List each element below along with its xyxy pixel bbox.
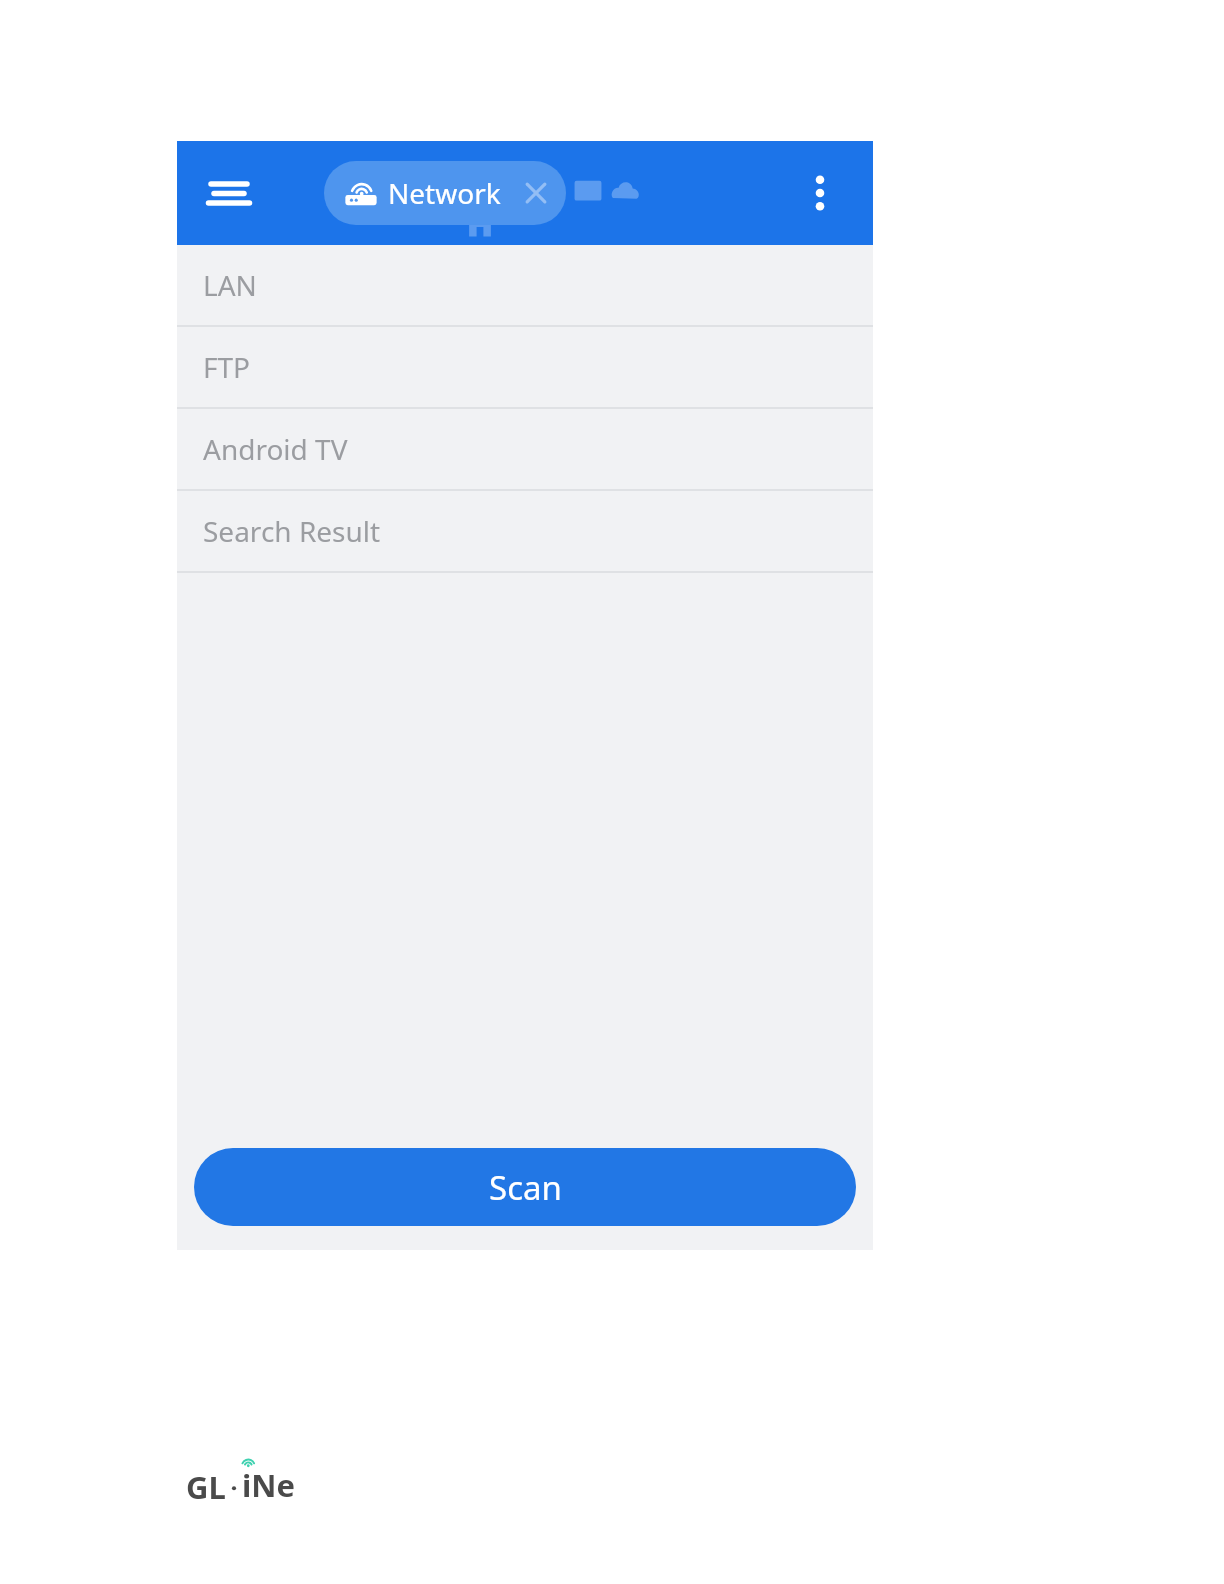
- button[interactable]: Search Result: [177, 491, 873, 571]
- staticText: Search Result: [203, 512, 381, 550]
- button[interactable]: Cloud: [609, 175, 641, 207]
- button[interactable]: Android TV: [177, 409, 873, 489]
- staticText: Network: [388, 174, 501, 212]
- staticText: GL: [186, 1466, 226, 1508]
- button[interactable]: Display: [572, 175, 604, 207]
- button[interactable]: Network: [324, 161, 566, 225]
- button[interactable]: Close tab: [519, 176, 553, 210]
- button[interactable]: Home: [463, 206, 497, 240]
- staticText: Scan: [489, 1165, 562, 1210]
- button[interactable]: FTP: [177, 327, 873, 407]
- staticText: FTP: [203, 348, 251, 386]
- staticText: LAN: [203, 266, 257, 304]
- staticText: iNet: [242, 1464, 306, 1510]
- button[interactable]: LAN: [177, 245, 873, 325]
- button[interactable]: More options: [790, 163, 850, 223]
- button[interactable]: Scan: [194, 1148, 856, 1226]
- button[interactable]: Menu: [205, 169, 253, 217]
- staticText: Android TV: [203, 430, 348, 468]
